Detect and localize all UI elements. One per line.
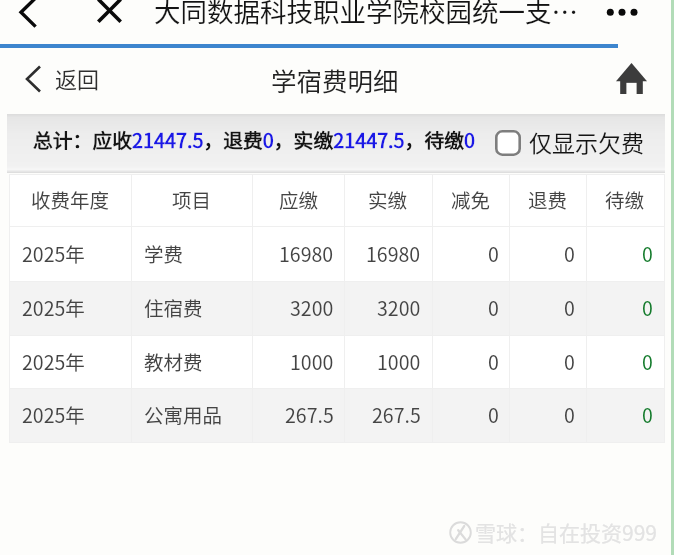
- button[interactable]: Close: [82, 0, 138, 44]
- staticText: 0: [564, 347, 575, 375]
- staticText: 16980: [366, 239, 421, 267]
- button[interactable]: Home: [598, 48, 664, 108]
- staticText: 0: [642, 400, 653, 428]
- staticText: 公寓用品: [144, 400, 223, 428]
- staticText: 0: [488, 400, 499, 428]
- button[interactable]: [9, 281, 664, 335]
- staticText: 1000: [290, 347, 334, 375]
- staticText: 0: [642, 293, 653, 321]
- staticText: 0: [488, 293, 499, 321]
- staticText: 0: [564, 239, 575, 267]
- staticText: 0: [564, 400, 575, 428]
- staticText: 教材费: [144, 347, 203, 375]
- staticText: 0: [642, 239, 653, 267]
- staticText: 雪球：自在投资999: [475, 517, 657, 547]
- staticText: 退费: [528, 185, 568, 213]
- staticText: 学宿费明细: [271, 61, 399, 98]
- staticText: 项目: [172, 185, 212, 213]
- staticText: 应缴: [279, 185, 319, 213]
- button[interactable]: 返回: [0, 48, 114, 108]
- staticText: 2025年: [22, 293, 85, 321]
- staticText: 总计：应收21447.5，退费0，实缴21447.5，待缴0: [33, 125, 475, 154]
- button[interactable]: [9, 388, 664, 442]
- staticText: 待缴: [605, 185, 645, 213]
- staticText: 0: [564, 293, 575, 321]
- button[interactable]: More options: [590, 0, 654, 44]
- staticText: 267.5: [285, 400, 334, 428]
- staticText: 学费: [144, 239, 184, 267]
- staticText: 收费年度: [31, 185, 110, 213]
- staticText: 2025年: [22, 400, 85, 428]
- staticText: 2025年: [22, 347, 85, 375]
- staticText: 16980: [279, 239, 334, 267]
- button[interactable]: Back: [0, 0, 56, 44]
- staticText: 1000: [377, 347, 421, 375]
- staticText: 减免: [451, 185, 491, 213]
- button[interactable]: 仅显示欠费: [488, 121, 651, 165]
- button[interactable]: 总计：应收21447.5，退费0，实缴21447.5，待缴0: [7, 114, 665, 173]
- staticText: 仅显示欠费: [529, 125, 644, 158]
- staticText: 2025年: [22, 239, 85, 267]
- staticText: 实缴: [368, 185, 408, 213]
- button[interactable]: [9, 226, 664, 281]
- staticText: 住宿费: [144, 293, 203, 321]
- staticText: 大同数据科技职业学院校园统一支…: [154, 0, 578, 29]
- staticText: 3200: [290, 293, 334, 321]
- staticText: 0: [488, 239, 499, 267]
- staticText: 267.5: [372, 400, 421, 428]
- staticText: 0: [488, 347, 499, 375]
- staticText: 返回: [55, 62, 100, 94]
- staticText: 0: [642, 347, 653, 375]
- staticText: 3200: [377, 293, 421, 321]
- button[interactable]: [9, 335, 664, 388]
